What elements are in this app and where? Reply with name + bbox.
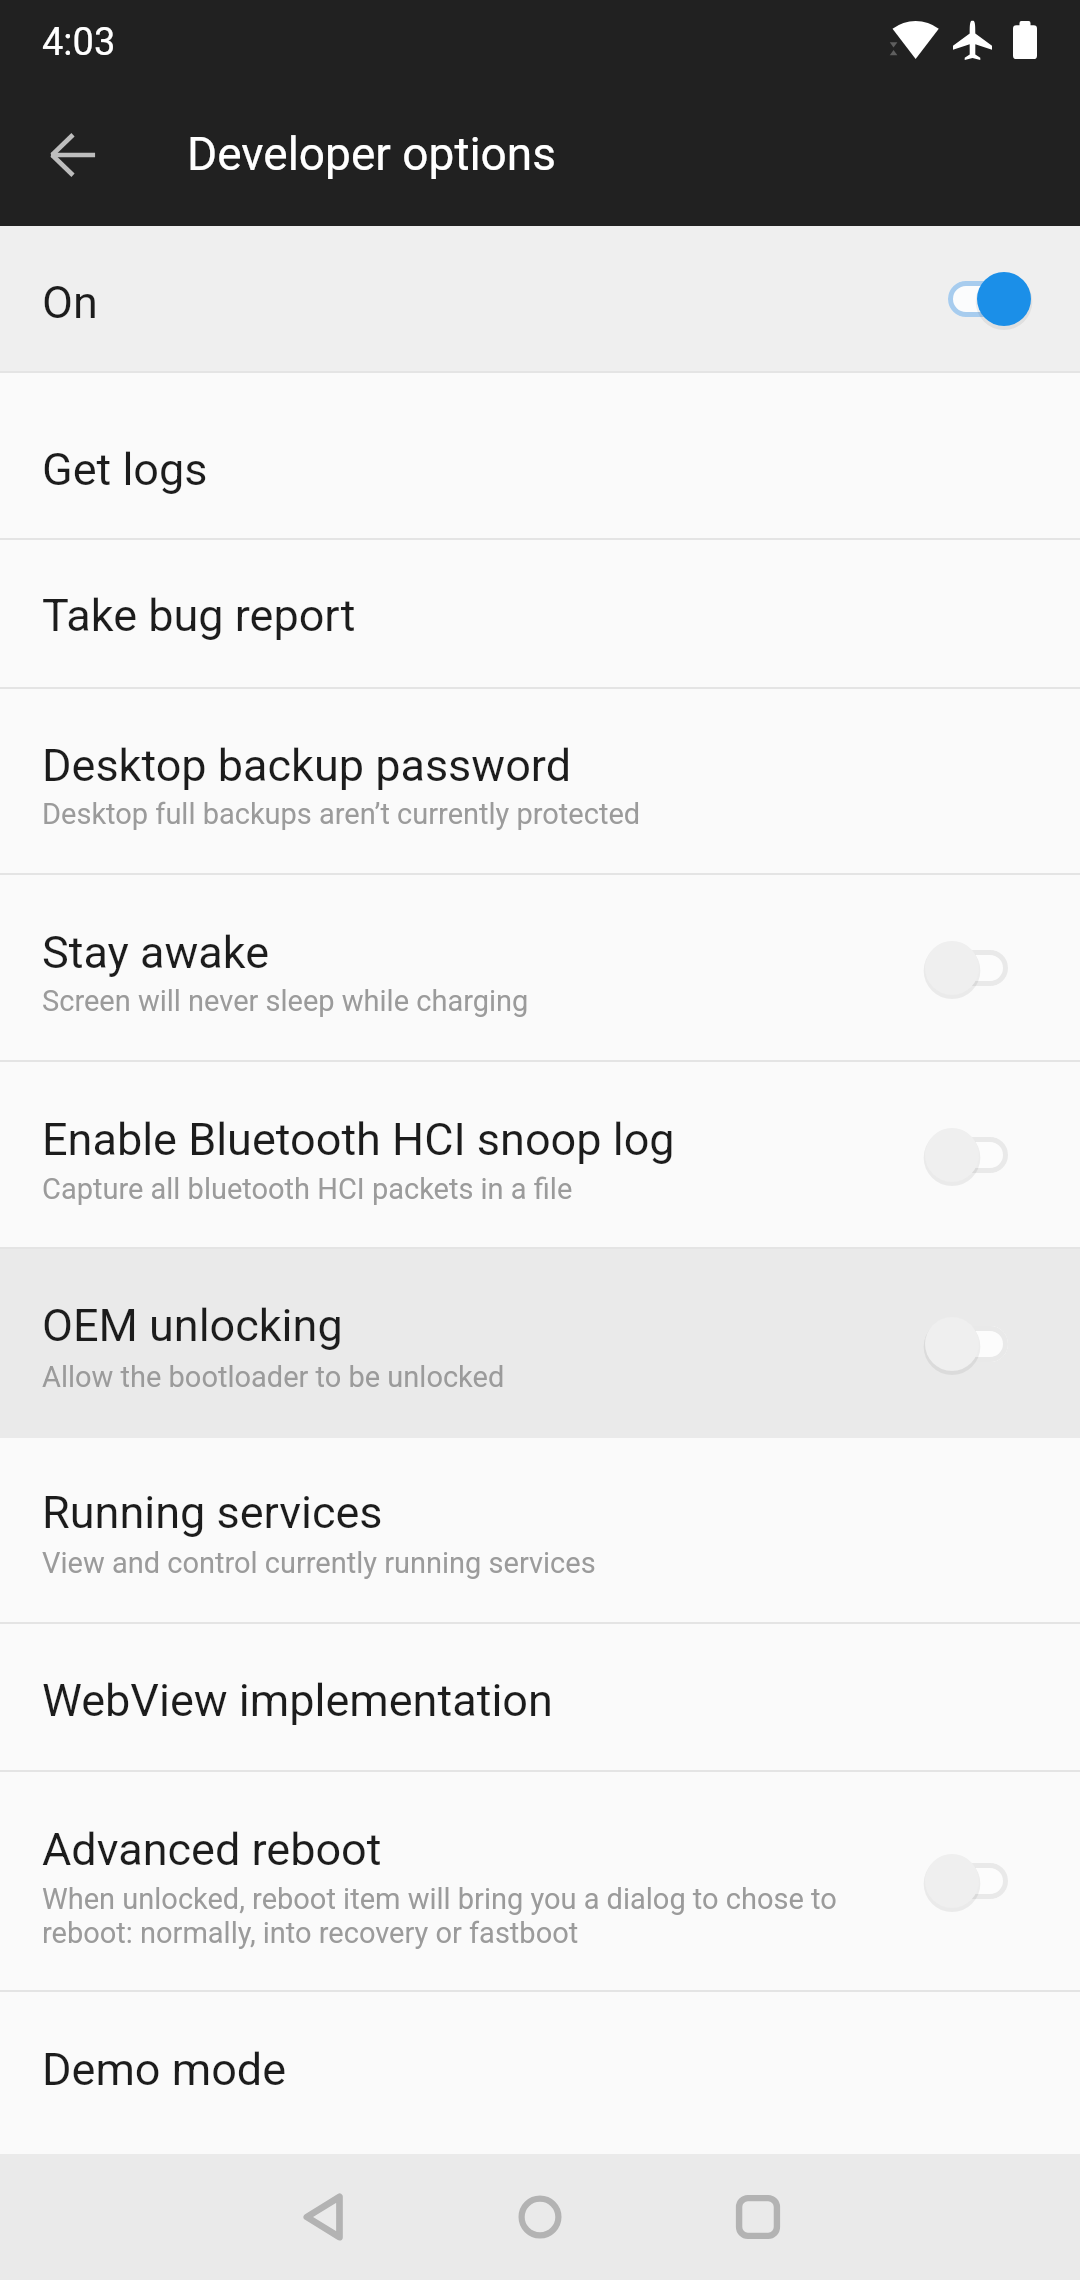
button[interactable]: Take bug report <box>0 540 1080 687</box>
staticText: Demo mode <box>42 2043 287 2096</box>
staticText: Advanced reboot <box>42 1823 382 1876</box>
button[interactable]: Advanced reboot <box>0 1772 1080 1990</box>
staticText: WebView implementation <box>42 1674 553 1727</box>
button[interactable]: Demo mode <box>0 1992 1080 2138</box>
staticText: OEM unlocking <box>42 1299 343 1352</box>
button[interactable]: Running services <box>0 1438 1080 1622</box>
button[interactable]: OEM unlocking <box>0 1249 1080 1438</box>
button[interactable]: Get logs <box>0 373 1080 538</box>
button[interactable]: WebView implementation <box>0 1624 1080 1770</box>
staticText: Capture all bluetooth HCI packets in a f… <box>42 1172 573 1206</box>
staticText: View and control currently running servi… <box>42 1546 596 1580</box>
staticText: Developer options <box>187 127 556 181</box>
staticText: When unlocked, reboot item will bring yo… <box>42 1882 837 1950</box>
button[interactable]: Desktop backup password <box>0 689 1080 873</box>
staticText: Screen will never sleep while charging <box>42 984 529 1018</box>
button[interactable]: Navigate up <box>20 102 126 208</box>
button[interactable]: On <box>0 226 1080 371</box>
button[interactable]: Stay awake <box>0 875 1080 1060</box>
button[interactable]: Enable Bluetooth HCI snoop log <box>0 1062 1080 1247</box>
staticText: Get logs <box>42 443 208 496</box>
staticText: Take bug report <box>42 589 356 642</box>
staticText: On <box>42 276 98 329</box>
staticText: Running services <box>42 1486 383 1539</box>
staticText: Stay awake <box>42 926 270 979</box>
button[interactable]: Back <box>240 2154 404 2280</box>
staticText: Allow the bootloader to be unlocked <box>42 1360 505 1394</box>
staticText: Desktop full backups aren’t currently pr… <box>42 797 641 831</box>
button[interactable]: Home <box>458 2154 622 2280</box>
button[interactable]: Recent apps <box>676 2154 840 2280</box>
staticText: 4:03 <box>42 20 116 65</box>
staticText: Desktop backup password <box>42 739 572 792</box>
staticText: Enable Bluetooth HCI snoop log <box>42 1113 675 1166</box>
